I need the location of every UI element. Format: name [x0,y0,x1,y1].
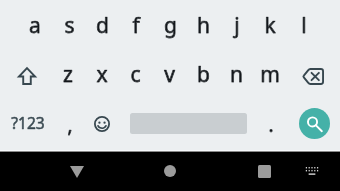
button[interactable]: Search [299,108,330,139]
staticText: x [96,60,108,89]
staticText: l [301,11,307,40]
button[interactable]: ?123 [5,105,50,139]
staticText: d [96,11,109,40]
button[interactable]: Switch keyboard [294,157,330,185]
button[interactable]: Backspace [296,59,330,93]
staticText: a [29,11,41,40]
staticText: z [63,60,73,89]
staticText: c [130,60,141,89]
staticText: l [301,11,307,40]
staticText: h [197,11,210,40]
staticText: , [67,112,73,138]
staticText: a [29,11,41,40]
button[interactable]: b [186,51,220,97]
staticText: g [164,11,177,40]
staticText: c [130,60,141,89]
staticText: ?123 [11,112,45,133]
staticText: b [197,60,210,89]
staticText: k [264,11,276,40]
staticText: h [197,11,210,40]
button[interactable]: n [219,51,253,97]
button[interactable]: Recent apps [246,157,282,185]
button[interactable]: Emoji [85,107,119,141]
button[interactable]: c [118,51,152,97]
button[interactable]: , [53,102,87,148]
staticText: x [96,60,108,89]
button[interactable]: Back [59,158,95,186]
button[interactable]: d [85,2,119,48]
staticText: f [132,11,140,40]
button[interactable]: Home [152,157,188,185]
button[interactable]: g [153,2,187,48]
staticText: b [197,60,210,89]
button[interactable]: a [18,2,52,48]
button[interactable]: x [85,51,119,97]
staticText: s [64,11,75,40]
staticText: j [234,11,240,40]
button[interactable]: m [253,51,287,97]
staticText: f [132,11,140,40]
staticText: ?123 [11,112,45,133]
button[interactable]: k [253,2,287,48]
staticText: z [63,60,73,89]
button[interactable]: j [220,2,254,48]
staticText: , [67,112,73,138]
staticText: g [164,11,177,40]
button[interactable]: s [52,2,86,48]
button[interactable]: f [119,2,153,48]
staticText: n [230,60,243,89]
staticText: m [260,60,280,89]
staticText: d [96,11,109,40]
staticText: . [268,112,274,138]
button[interactable]: z [51,51,85,97]
staticText: k [264,11,276,40]
staticText: . [268,112,274,138]
staticText: v [164,60,175,89]
staticText: s [64,11,75,40]
button[interactable]: h [186,2,220,48]
staticText: j [234,11,240,40]
button[interactable]: v [152,51,186,97]
staticText: v [164,60,175,89]
button[interactable]: . [254,102,288,148]
button[interactable]: l [287,2,321,48]
staticText: n [230,60,243,89]
staticText: m [260,60,280,89]
button[interactable]: Shift [9,59,44,93]
